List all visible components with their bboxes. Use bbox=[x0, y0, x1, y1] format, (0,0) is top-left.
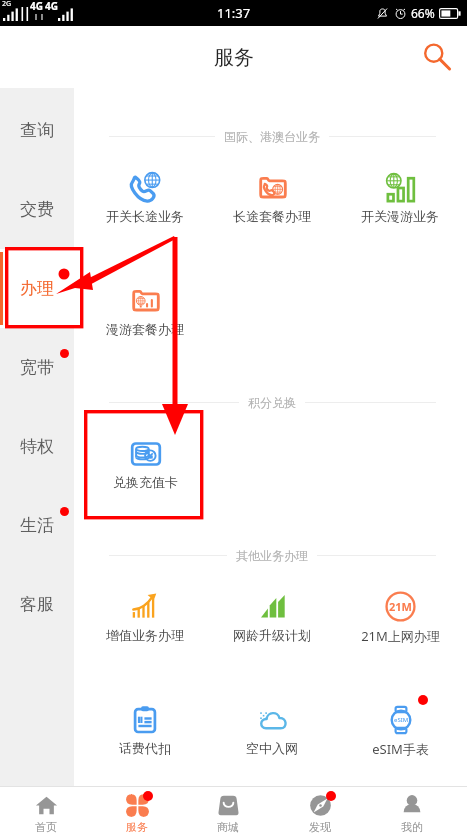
button[interactable]: 发现 bbox=[274, 787, 366, 839]
staticText: 查询 bbox=[20, 120, 54, 141]
staticText: 66% bbox=[411, 5, 435, 21]
button[interactable]: eSIM bbox=[336, 688, 464, 786]
staticText: 服务 bbox=[126, 820, 148, 834]
button[interactable]: 开关长途业务 bbox=[81, 156, 208, 269]
staticText: 开关长途业务 bbox=[106, 208, 184, 224]
button[interactable]: 特权 bbox=[0, 407, 74, 486]
staticText: eSIM手表 bbox=[372, 740, 429, 758]
button[interactable]: 宽带 bbox=[0, 328, 74, 407]
staticText: 办理 bbox=[20, 278, 54, 299]
button[interactable]: 客服 bbox=[0, 565, 74, 644]
button[interactable]: 漫游套餐办理 bbox=[81, 269, 209, 382]
staticText: eSIM bbox=[394, 716, 409, 724]
button[interactable]: 生活 bbox=[0, 486, 74, 565]
staticText: 4G bbox=[30, 0, 43, 13]
button[interactable]: 服务 bbox=[91, 787, 182, 839]
staticText: 特权 bbox=[20, 436, 54, 457]
staticText: 积分兑换 bbox=[248, 395, 296, 410]
staticText: 国际、港澳台业务 bbox=[224, 129, 320, 144]
staticText: 话费代扣 bbox=[119, 740, 171, 756]
button[interactable]: 增值业务办理 bbox=[81, 575, 208, 688]
staticText: 兑换充值卡 bbox=[113, 474, 178, 490]
button[interactable]: 交费 bbox=[0, 170, 74, 249]
button[interactable]: 办理 bbox=[0, 249, 74, 328]
button[interactable]: 空中入网 bbox=[208, 688, 336, 786]
staticText: 增值业务办理 bbox=[106, 627, 184, 643]
staticText: 长途套餐办理 bbox=[233, 208, 311, 224]
staticText: 11:37 bbox=[217, 4, 251, 22]
button[interactable]: 21M bbox=[336, 575, 464, 688]
staticText: 漫游套餐办理 bbox=[106, 321, 184, 337]
staticText: 宽带 bbox=[20, 357, 54, 378]
staticText: 交费 bbox=[20, 199, 54, 220]
button[interactable]: 首页 bbox=[0, 787, 91, 839]
staticText: 21M bbox=[389, 599, 412, 614]
staticText: 开关漫游业务 bbox=[361, 208, 439, 224]
staticText: 生活 bbox=[20, 515, 54, 536]
staticText: 空中入网 bbox=[246, 740, 298, 756]
staticText: 21M上网办理 bbox=[361, 627, 440, 645]
staticText: 4G bbox=[45, 0, 58, 13]
staticText: 我的 bbox=[401, 820, 423, 834]
button[interactable]: 网龄升级计划 bbox=[208, 575, 336, 688]
staticText: 发现 bbox=[309, 820, 331, 834]
button[interactable]: 开关漫游业务 bbox=[336, 156, 464, 269]
staticText: 其他业务办理 bbox=[236, 548, 308, 563]
button[interactable]: Search bbox=[409, 29, 463, 83]
staticText: 首页 bbox=[35, 820, 57, 834]
staticText: 2G bbox=[2, 0, 12, 9]
button[interactable]: 长途套餐办理 bbox=[208, 156, 336, 269]
button[interactable]: 我的 bbox=[366, 787, 458, 839]
button[interactable]: 话费代扣 bbox=[81, 688, 208, 786]
button[interactable]: 查询 bbox=[0, 91, 74, 170]
staticText: 服务 bbox=[214, 45, 254, 70]
button[interactable]: 兑换充值卡 bbox=[81, 422, 209, 535]
button[interactable]: 商城 bbox=[182, 787, 274, 839]
staticText: 客服 bbox=[20, 594, 54, 615]
staticText: 网龄升级计划 bbox=[233, 627, 311, 643]
staticText: 商城 bbox=[217, 820, 239, 834]
